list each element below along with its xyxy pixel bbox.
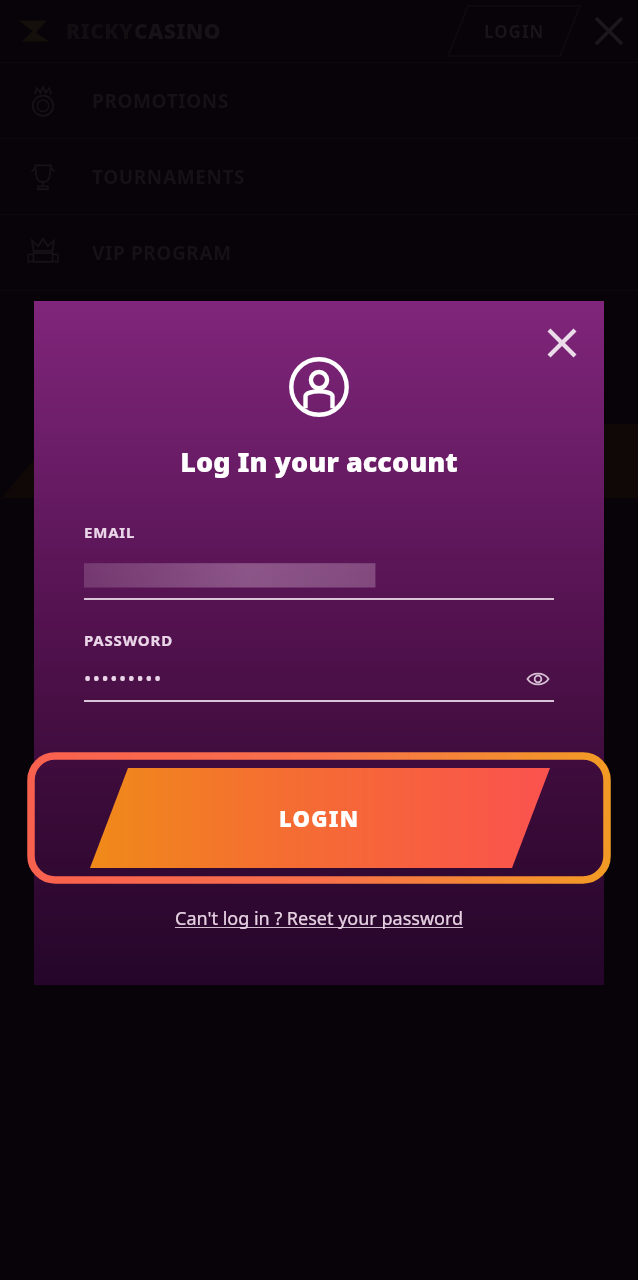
button[interactable]: ••••••••• [84, 662, 554, 696]
button[interactable] [84, 560, 554, 592]
button[interactable]: LOGIN [27, 752, 611, 884]
button[interactable]: LOGIN [448, 2, 580, 60]
button[interactable]: Show password [522, 663, 554, 695]
staticText: Can't log in ? Reset your password [175, 906, 464, 931]
staticText: TOURNAMENTS [92, 164, 246, 190]
staticText: ••••••••• [84, 666, 163, 692]
staticText: CASINO [134, 17, 221, 46]
button[interactable]: Can't log in ? Reset your password [169, 902, 470, 935]
button[interactable]: Close menu [580, 2, 638, 60]
staticText: Log In your account [180, 443, 458, 480]
staticText: LOGIN [279, 803, 360, 833]
staticText: PROMOTIONS [92, 88, 229, 114]
staticText: RICKY [66, 17, 134, 46]
staticText: EMAIL [84, 522, 136, 542]
button[interactable]: Close [534, 315, 590, 371]
staticText: PASSWORD [84, 630, 173, 650]
staticText: VIP PROGRAM [92, 240, 232, 266]
staticText: LOGIN [484, 20, 545, 43]
